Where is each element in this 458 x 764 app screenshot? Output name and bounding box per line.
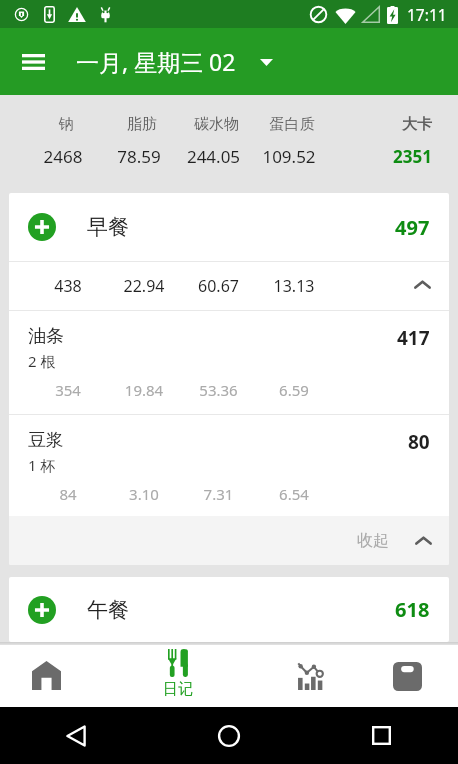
button[interactable]: Weight xyxy=(356,645,458,707)
staticText: 60.67 xyxy=(182,275,255,297)
button[interactable]: 438 xyxy=(9,262,449,310)
button[interactable]: 早餐 xyxy=(9,193,449,261)
staticText: 2468 xyxy=(25,145,101,168)
button[interactable]: Reports xyxy=(264,645,356,707)
staticText: 1 杯 xyxy=(28,455,56,475)
button[interactable]: 油条 xyxy=(9,311,449,414)
staticText: 油条 xyxy=(28,325,64,348)
staticText: 244.05 xyxy=(177,145,250,168)
staticText: 豆浆 xyxy=(28,429,64,452)
staticText: 618 xyxy=(395,596,430,623)
staticText: 大卡 xyxy=(402,115,432,134)
button[interactable]: 午餐 xyxy=(9,577,449,642)
button[interactable]: 豆浆 xyxy=(9,415,449,516)
staticText: 109.52 xyxy=(250,145,328,168)
staticText: 438 xyxy=(30,275,106,297)
staticText: 碳水物 xyxy=(180,115,253,134)
button[interactable]: 收起 xyxy=(9,516,449,565)
button[interactable]: Back xyxy=(0,707,152,764)
button[interactable]: Home xyxy=(152,707,305,764)
staticText: 2 根 xyxy=(28,351,56,371)
button[interactable]: Home xyxy=(0,645,92,707)
staticText: 417 xyxy=(397,325,430,351)
button[interactable]: 日记 xyxy=(92,645,264,707)
button[interactable]: Recent apps xyxy=(305,707,458,764)
staticText: 497 xyxy=(395,214,430,241)
staticText: 354 xyxy=(30,380,106,400)
staticText: 6.59 xyxy=(255,380,333,400)
staticText: 午餐 xyxy=(87,597,129,623)
staticText: 早餐 xyxy=(87,214,129,240)
staticText: 脂肪 xyxy=(104,115,180,134)
staticText: 53.36 xyxy=(182,380,255,400)
staticText: 3.10 xyxy=(106,484,182,504)
staticText: 22.94 xyxy=(106,275,182,297)
staticText: 一月, 星期三 02 xyxy=(76,46,236,77)
staticText: 13.13 xyxy=(255,275,333,297)
staticText: 6.54 xyxy=(255,484,333,504)
staticText: 7.31 xyxy=(182,484,255,504)
staticText: 2351 xyxy=(393,145,432,168)
staticText: 80 xyxy=(408,429,430,455)
staticText: 84 xyxy=(30,484,106,504)
staticText: 收起 xyxy=(357,531,389,551)
staticText: 蛋白质 xyxy=(253,115,331,134)
staticText: 78.59 xyxy=(101,145,177,168)
staticText: 日记 xyxy=(163,680,193,699)
button[interactable]: Open navigation drawer xyxy=(0,28,66,95)
staticText: 19.84 xyxy=(106,380,182,400)
staticText: 17:11 xyxy=(407,4,447,25)
button[interactable]: Change date xyxy=(253,49,279,75)
staticText: 钠 xyxy=(28,115,104,134)
